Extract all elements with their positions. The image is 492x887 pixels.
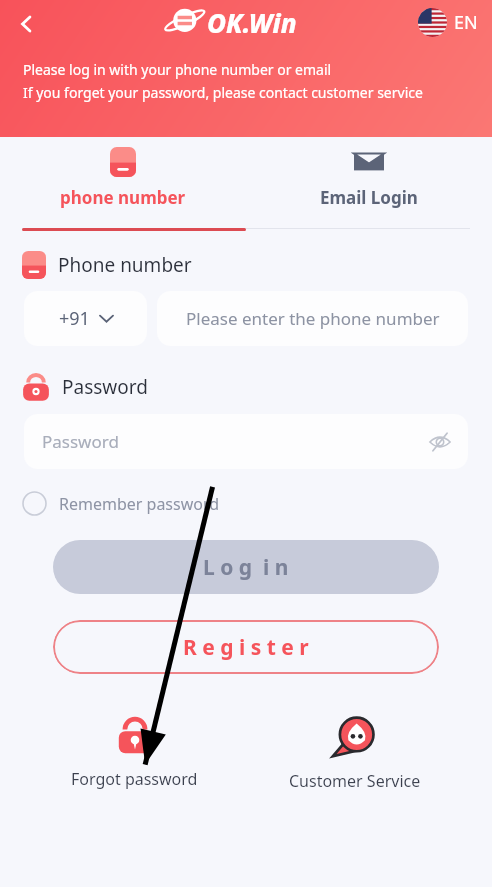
button[interactable]: phone number bbox=[0, 137, 246, 231]
staticText: Phone number bbox=[58, 252, 192, 278]
staticText: Email Login bbox=[320, 186, 418, 209]
staticText: If you forget your password, please cont… bbox=[23, 83, 423, 102]
staticText: EN bbox=[454, 10, 478, 35]
staticText: Customer Service bbox=[289, 770, 421, 792]
staticText: phone number bbox=[60, 186, 186, 209]
button[interactable]: L o g i n bbox=[53, 540, 439, 594]
button[interactable]: Customer Service bbox=[269, 712, 441, 796]
staticText: Forgot password bbox=[71, 768, 198, 790]
button[interactable]: Forgot password bbox=[51, 712, 218, 794]
staticText: Please enter the phone number bbox=[186, 307, 440, 330]
staticText: OK.Win bbox=[207, 5, 297, 40]
staticText: R e g i s t e r bbox=[183, 633, 309, 662]
button[interactable]: Back bbox=[4, 2, 48, 46]
button[interactable]: EN bbox=[414, 4, 482, 41]
button[interactable]: +91 bbox=[24, 291, 147, 346]
button[interactable]: Email Login bbox=[246, 137, 492, 231]
staticText: +91 bbox=[59, 306, 90, 331]
staticText: Password bbox=[42, 430, 119, 453]
staticText: Remember password bbox=[59, 493, 220, 515]
button[interactable]: R e g i s t e r bbox=[53, 620, 439, 674]
staticText: Please log in with your phone number or … bbox=[23, 60, 332, 79]
button[interactable]: Show password bbox=[424, 426, 456, 458]
staticText: Password bbox=[62, 374, 148, 400]
button[interactable]: Password bbox=[24, 414, 468, 469]
staticText: L o g i n bbox=[203, 553, 289, 582]
button[interactable]: Remember password bbox=[22, 489, 228, 518]
button[interactable]: Please enter the phone number bbox=[157, 291, 468, 346]
